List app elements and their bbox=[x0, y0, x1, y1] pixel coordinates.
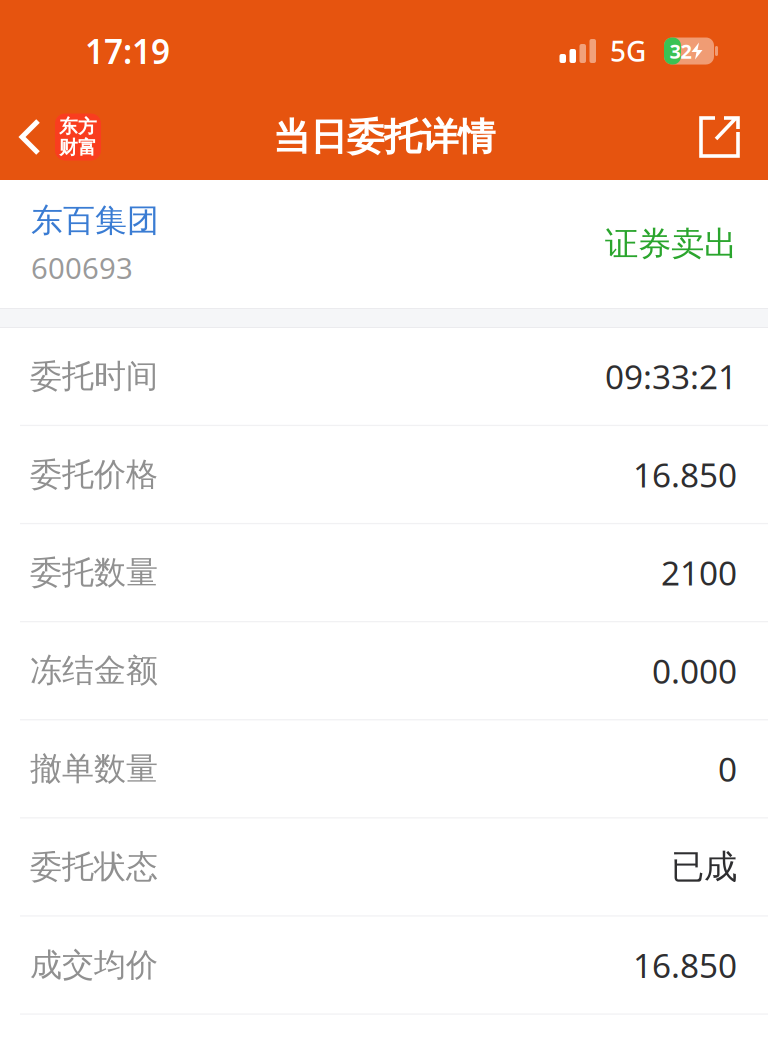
button[interactable]: Share bbox=[699, 116, 768, 158]
staticText: 32 bbox=[669, 38, 691, 64]
staticText: 16.850 bbox=[633, 943, 737, 987]
button[interactable]: 东百集团 bbox=[31, 201, 159, 240]
staticText: 成交均价 bbox=[30, 945, 158, 985]
staticText: 证券卖出 bbox=[605, 223, 737, 264]
staticText: 17:19 bbox=[85, 29, 170, 73]
staticText: 委托状态 bbox=[30, 847, 158, 886]
staticText: 东方 bbox=[59, 115, 97, 138]
staticText: 委托价格 bbox=[30, 455, 158, 494]
staticText: 委托时间 bbox=[30, 357, 158, 396]
staticText: 16.850 bbox=[633, 452, 737, 497]
staticText: 已成 bbox=[671, 846, 737, 887]
staticText: 当日委托详情 bbox=[273, 114, 495, 160]
staticText: 委托数量 bbox=[30, 553, 158, 592]
button[interactable]: Back bbox=[0, 113, 101, 160]
staticText: 冻结金额 bbox=[30, 651, 158, 690]
staticText: 东百集团 bbox=[31, 201, 159, 240]
staticText: 2100 bbox=[661, 550, 737, 595]
staticText: 5G bbox=[610, 32, 646, 70]
staticText: 0 bbox=[718, 747, 737, 791]
staticText: 撤单数量 bbox=[30, 749, 158, 788]
staticText: 600693 bbox=[31, 248, 133, 287]
staticText: 0.000 bbox=[652, 649, 737, 693]
staticText: 09:33:21 bbox=[605, 354, 737, 399]
staticText: 财富 bbox=[59, 136, 97, 159]
